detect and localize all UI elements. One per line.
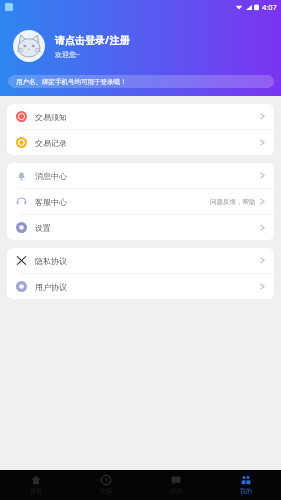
button[interactable]: 首页	[0, 470, 71, 500]
staticText: 隐私协议	[35, 256, 67, 266]
staticText: 请点击登录/注册	[55, 33, 130, 47]
staticText: 交易须知	[35, 112, 67, 122]
button[interactable]: 隐私协议	[7, 248, 274, 273]
staticText: 交易	[100, 487, 112, 495]
staticText: 设置	[35, 223, 51, 233]
staticText: 问题反馈，帮助	[210, 198, 256, 206]
button[interactable]: 我的	[211, 470, 281, 500]
staticText: 消息中心	[35, 171, 67, 181]
staticText: 首页	[30, 487, 42, 495]
staticText: 用户协议	[35, 282, 67, 292]
button[interactable]: 客服中心	[7, 189, 274, 214]
staticText: 我的	[240, 487, 252, 495]
staticText: 客服中心	[35, 197, 67, 207]
button[interactable]: 设置	[7, 215, 274, 240]
button[interactable]: 请点击登录/注册	[13, 30, 130, 62]
button[interactable]: 交易须知	[7, 104, 274, 129]
staticText: 消息	[170, 487, 182, 495]
button[interactable]: 消息中心	[7, 163, 274, 188]
button[interactable]: 交易记录	[7, 130, 274, 155]
button[interactable]: 交易	[71, 470, 141, 500]
button[interactable]: 消息	[141, 470, 211, 500]
staticText: 4:07	[262, 2, 277, 12]
staticText: 欢迎您~	[55, 50, 81, 60]
staticText: 用户名、绑定手机号均可用于登录哦！	[16, 78, 127, 86]
button[interactable]: 用户协议	[7, 274, 274, 299]
staticText: 交易记录	[35, 138, 67, 148]
